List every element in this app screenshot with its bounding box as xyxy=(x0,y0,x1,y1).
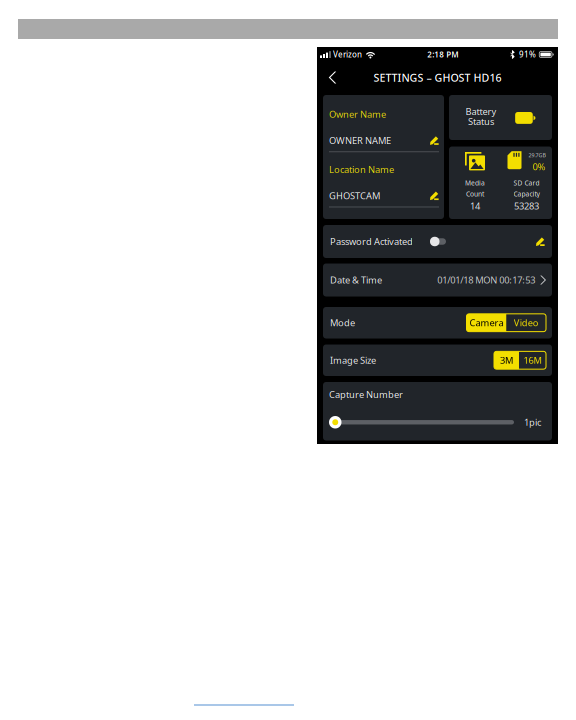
staticText: Status xyxy=(468,115,494,128)
staticText: Verizon xyxy=(331,49,362,60)
staticText: 16M xyxy=(523,354,541,366)
staticText: Image Size xyxy=(330,354,376,366)
staticText: GHOSTCAM xyxy=(329,189,380,202)
staticText: Video xyxy=(514,317,539,329)
staticText: Location Name xyxy=(329,163,394,176)
staticText: Owner Name xyxy=(329,108,386,120)
staticText: Capacity xyxy=(513,189,539,198)
staticText: 14 xyxy=(470,200,480,212)
staticText: 3M xyxy=(500,354,513,366)
staticText: OWNER NAME xyxy=(329,134,391,147)
staticText: Capture Number xyxy=(329,388,403,401)
staticText: Password Activated xyxy=(330,235,413,248)
staticText: Count xyxy=(466,189,484,198)
button[interactable]: 3M xyxy=(494,351,546,369)
staticText: SD Card xyxy=(513,178,539,187)
staticText: 91% xyxy=(519,49,536,60)
staticText: 53283 xyxy=(514,200,539,212)
staticText: Camera xyxy=(469,317,503,329)
staticText: 01/01/18 MON 00:17:53 xyxy=(437,274,535,286)
staticText: Date & Time xyxy=(330,274,382,286)
staticText: 29.7GB xyxy=(528,152,545,159)
staticText: SETTINGS – GHOST HD16 xyxy=(373,70,501,85)
staticText: Battery xyxy=(465,105,496,118)
staticText: Media xyxy=(465,178,485,187)
button[interactable]: Camera xyxy=(466,314,546,332)
button[interactable]: Date & Time xyxy=(323,263,552,296)
staticText: 1pic xyxy=(524,416,541,428)
staticText: Mode xyxy=(330,317,355,329)
button[interactable]: Password Activated xyxy=(323,225,552,258)
button[interactable]: Back xyxy=(322,65,346,89)
staticText: 2:18 PM xyxy=(427,49,458,60)
staticText: 0% xyxy=(532,160,545,173)
